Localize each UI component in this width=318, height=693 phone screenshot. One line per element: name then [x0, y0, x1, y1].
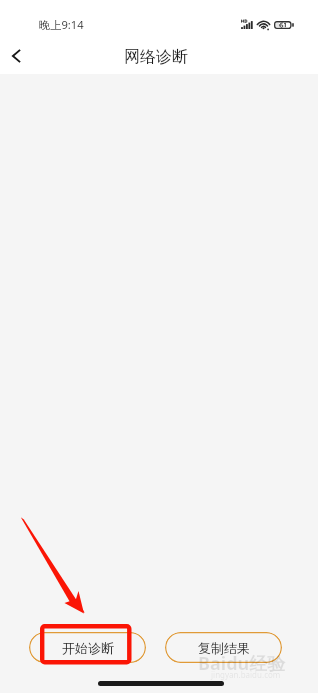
button[interactable]: 开始诊断: [29, 632, 146, 663]
staticText: jingyan.baidu.com: [211, 669, 281, 680]
staticText: 网络诊断: [124, 47, 188, 67]
staticText: 晚上9:14: [39, 17, 84, 32]
staticText: 复制结果: [198, 640, 250, 656]
staticText: 开始诊断: [62, 640, 114, 656]
button[interactable]: 复制结果: [165, 632, 282, 663]
button[interactable]: Back: [0, 38, 32, 74]
staticText: Baidu经验: [198, 651, 286, 676]
